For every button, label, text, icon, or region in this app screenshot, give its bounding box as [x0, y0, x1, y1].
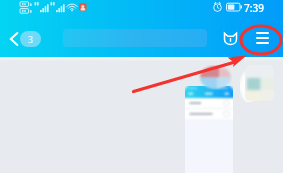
button[interactable]: Mascot — [220, 29, 240, 49]
staticText: 7:39 — [244, 1, 264, 15]
staticText: 3 — [28, 33, 34, 45]
button[interactable] — [63, 29, 207, 47]
button[interactable]: Back — [2, 27, 25, 51]
button[interactable]: 3 — [20, 31, 41, 47]
button[interactable]: Menu — [252, 28, 272, 48]
